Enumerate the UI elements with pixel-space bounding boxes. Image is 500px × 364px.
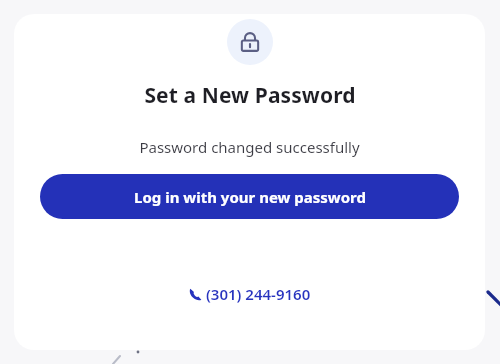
button[interactable]: Call support (183, 281, 317, 307)
button[interactable]: Log in with your new password (40, 174, 459, 219)
staticText: Password changed successfully (139, 137, 360, 157)
staticText: (301) 244-9160 (206, 284, 311, 304)
staticText: Set a New Password (144, 81, 356, 110)
staticText: Log in with your new password (134, 187, 366, 207)
other: Call support (189, 288, 202, 301)
